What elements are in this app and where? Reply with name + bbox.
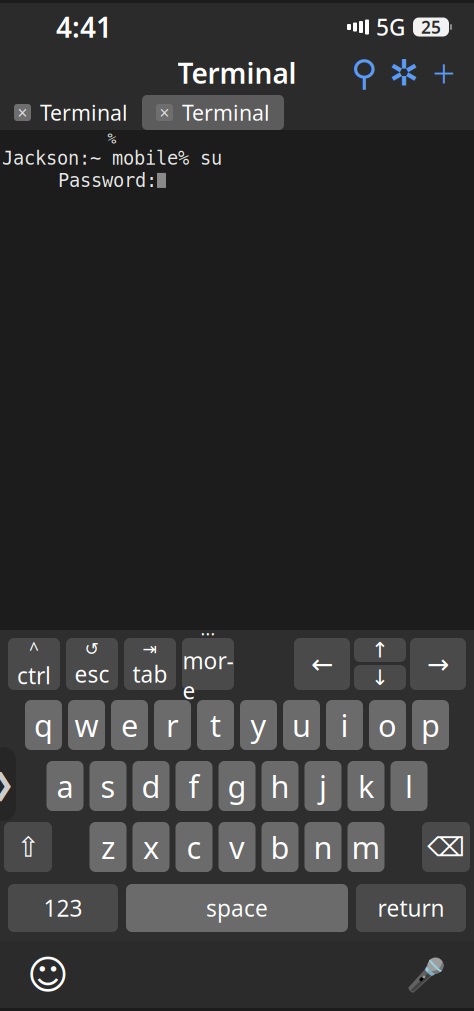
- staticText: n: [313, 827, 332, 867]
- button[interactable]: Shift: [4, 822, 52, 872]
- staticText: r: [166, 705, 179, 745]
- staticText: ⇧: [16, 831, 39, 863]
- button[interactable]: l: [390, 761, 427, 811]
- button[interactable]: more: [182, 638, 234, 690]
- staticText: ←: [311, 649, 333, 679]
- staticText: 🎤: [406, 957, 446, 993]
- staticText: k: [358, 766, 374, 806]
- button[interactable]: esc: [66, 638, 118, 690]
- staticText: more: [182, 645, 233, 706]
- button[interactable]: Up: [354, 638, 406, 662]
- button[interactable]: Down: [354, 665, 406, 690]
- staticText: Terminal: [182, 98, 270, 127]
- staticText: Jackson:~ mobile% su: [2, 148, 222, 169]
- staticText: ↓: [371, 665, 389, 690]
- button[interactable]: u: [283, 700, 320, 750]
- button[interactable]: t: [197, 700, 234, 750]
- button[interactable]: e: [111, 700, 148, 750]
- staticText: 123: [43, 893, 82, 923]
- button[interactable]: n: [304, 822, 341, 872]
- button[interactable]: h: [261, 761, 298, 811]
- staticText: %: [107, 130, 116, 147]
- button[interactable]: Delete: [422, 822, 470, 872]
- staticText: ×: [159, 101, 169, 124]
- staticText: 4:41: [56, 8, 112, 46]
- button[interactable]: d: [132, 761, 169, 811]
- staticText: ···: [200, 622, 215, 645]
- staticText: ↑: [371, 638, 389, 662]
- button[interactable]: c: [175, 822, 212, 872]
- staticText: z: [101, 827, 115, 867]
- staticText: Terminal: [40, 98, 128, 127]
- button[interactable]: s: [89, 761, 126, 811]
- button[interactable]: ctrl: [8, 638, 60, 690]
- button[interactable]: Show sidebar: [0, 747, 16, 821]
- staticText: Terminal: [177, 54, 296, 92]
- button[interactable]: f: [175, 761, 212, 811]
- staticText: 25: [421, 15, 441, 38]
- staticText: ↺: [84, 639, 99, 659]
- button[interactable]: g: [218, 761, 255, 811]
- staticText: ✲: [389, 53, 419, 93]
- button[interactable]: return: [356, 884, 466, 932]
- button[interactable]: z: [89, 822, 126, 872]
- button[interactable]: Right: [410, 638, 466, 690]
- button[interactable]: p: [412, 700, 449, 750]
- staticText: v: [229, 827, 245, 867]
- staticText: c: [186, 827, 201, 867]
- button[interactable]: New Terminal: [424, 53, 464, 93]
- button[interactable]: j: [304, 761, 341, 811]
- staticText: +: [432, 46, 455, 99]
- staticText: esc: [74, 659, 109, 689]
- button[interactable]: ×: [142, 95, 284, 130]
- staticText: q: [34, 705, 53, 745]
- staticText: j: [319, 766, 327, 806]
- staticText: 5G: [376, 12, 405, 42]
- staticText: x: [143, 827, 159, 867]
- button[interactable]: b: [261, 822, 298, 872]
- staticText: m: [351, 827, 380, 867]
- staticText: o: [378, 705, 397, 745]
- staticText: return: [377, 893, 444, 923]
- staticText: d: [141, 766, 160, 806]
- button[interactable]: Dictation: [402, 951, 450, 999]
- staticText: f: [188, 766, 199, 806]
- staticText: b: [270, 827, 289, 867]
- button[interactable]: Keys: [344, 53, 384, 93]
- staticText: y: [250, 705, 266, 745]
- staticText: l: [405, 766, 413, 806]
- button[interactable]: Emoji: [24, 951, 72, 999]
- staticText: ⌫: [427, 832, 465, 862]
- staticText: tab: [132, 659, 167, 689]
- button[interactable]: Settings: [384, 53, 424, 93]
- staticText: ⇥: [142, 639, 157, 659]
- button[interactable]: space: [126, 884, 348, 932]
- staticText: t: [210, 705, 221, 745]
- staticText: →: [427, 649, 449, 679]
- button[interactable]: o: [369, 700, 406, 750]
- button[interactable]: r: [154, 700, 191, 750]
- staticText: s: [100, 766, 115, 806]
- button[interactable]: w: [68, 700, 105, 750]
- staticText: a: [56, 766, 73, 806]
- button[interactable]: Left: [294, 638, 350, 690]
- button[interactable]: 123: [8, 884, 118, 932]
- button[interactable]: tab: [124, 638, 176, 690]
- button[interactable]: k: [347, 761, 384, 811]
- staticText: ^: [29, 637, 39, 660]
- staticText: p: [421, 705, 440, 745]
- button[interactable]: m: [347, 822, 384, 872]
- button[interactable]: x: [132, 822, 169, 872]
- button[interactable]: ×: [0, 95, 142, 130]
- staticText: ctrl: [17, 660, 51, 691]
- staticText: h: [270, 766, 289, 806]
- staticText: u: [292, 705, 311, 745]
- staticText: g: [227, 766, 246, 806]
- button[interactable]: q: [25, 700, 62, 750]
- button[interactable]: y: [240, 700, 277, 750]
- button[interactable]: v: [218, 822, 255, 872]
- staticText: ⚲: [351, 53, 377, 93]
- staticText: i: [340, 705, 348, 745]
- button[interactable]: a: [46, 761, 83, 811]
- button[interactable]: i: [326, 700, 363, 750]
